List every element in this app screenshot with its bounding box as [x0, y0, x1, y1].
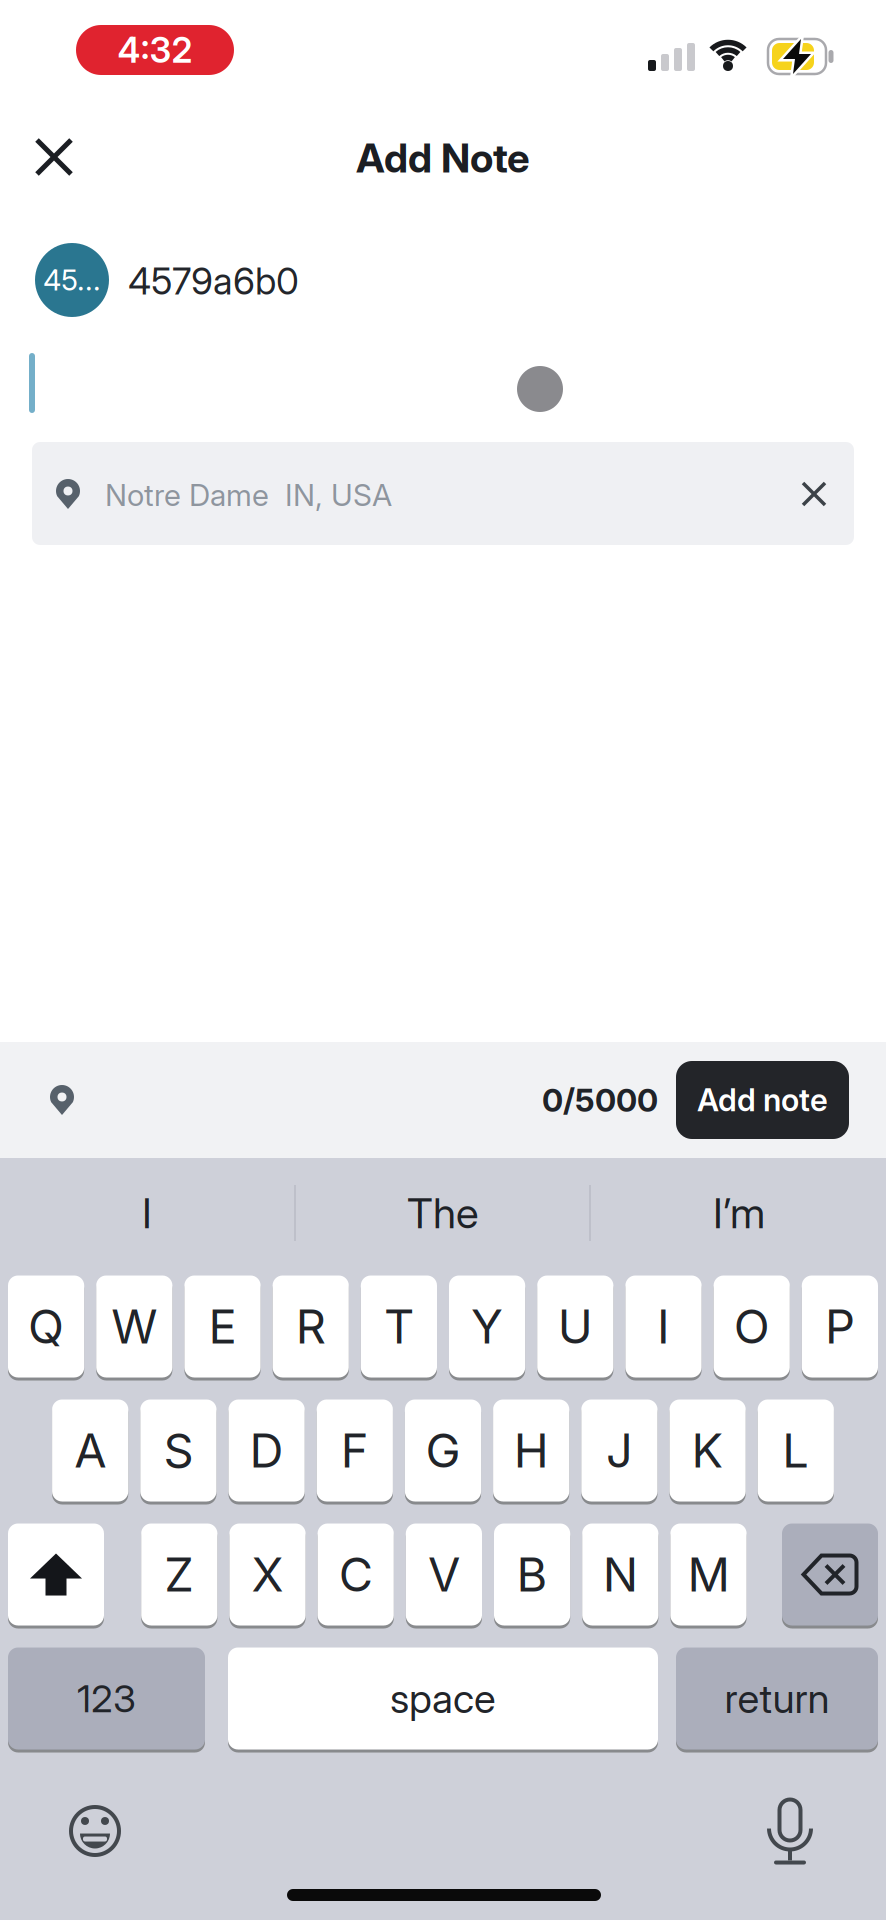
staticText: M [687, 1546, 729, 1603]
button[interactable]: I’m [594, 1168, 884, 1258]
staticText: S [163, 1422, 193, 1479]
button[interactable]: Y [449, 1274, 525, 1379]
staticText: 0/5000 [542, 1081, 658, 1119]
staticText: O [734, 1298, 770, 1355]
button[interactable]: E [184, 1274, 261, 1379]
button[interactable]: Delete [782, 1522, 878, 1627]
staticText: P [825, 1298, 855, 1355]
staticText: L [782, 1422, 809, 1479]
button[interactable]: Z [141, 1522, 217, 1627]
button[interactable]: Location [42, 1080, 82, 1120]
staticText: 45... [43, 262, 101, 298]
button[interactable]: O [714, 1274, 790, 1379]
button[interactable]: space [228, 1646, 658, 1751]
button[interactable]: 4:32 [76, 25, 234, 75]
staticText: Y [471, 1298, 503, 1355]
staticText: G [425, 1422, 460, 1479]
button[interactable]: Close [24, 127, 84, 187]
button[interactable]: The [298, 1168, 588, 1258]
staticText: R [296, 1298, 326, 1355]
staticText: W [111, 1298, 157, 1355]
button[interactable]: U [537, 1274, 613, 1379]
button[interactable]: Shift [8, 1522, 104, 1627]
button[interactable]: X [229, 1522, 306, 1627]
staticText: return [724, 1674, 829, 1723]
button[interactable]: Emoji [67, 1803, 123, 1859]
button[interactable]: R [273, 1274, 349, 1379]
button[interactable]: C [318, 1522, 394, 1627]
staticText: H [514, 1422, 549, 1479]
button[interactable]: A [52, 1398, 128, 1503]
staticText: U [558, 1298, 593, 1355]
staticText: 4579a6b0 [128, 259, 299, 303]
button[interactable]: I [2, 1168, 292, 1258]
staticText: Add note [697, 1081, 828, 1119]
button[interactable]: 123 [8, 1646, 205, 1751]
button[interactable]: H [493, 1398, 569, 1503]
staticText: C [339, 1546, 373, 1603]
button[interactable]: I [625, 1274, 702, 1379]
staticText: Add Note [356, 134, 530, 182]
staticText: I [142, 1188, 152, 1238]
staticText: V [428, 1546, 460, 1603]
staticText: Notre Dame IN, USA [105, 477, 392, 513]
staticText: A [74, 1422, 106, 1479]
button[interactable]: M [670, 1522, 747, 1627]
button[interactable]: G [405, 1398, 481, 1503]
button[interactable]: T [361, 1274, 437, 1379]
staticText: F [341, 1422, 369, 1479]
button[interactable]: F [317, 1398, 393, 1503]
staticText: 123 [77, 1675, 136, 1721]
staticText: space [390, 1674, 496, 1723]
button[interactable]: V [406, 1522, 482, 1627]
button[interactable]: B [494, 1522, 570, 1627]
staticText: D [250, 1422, 284, 1479]
button[interactable]: Remove location [789, 469, 839, 519]
button[interactable]: Add note [676, 1061, 849, 1139]
button[interactable]: Dictate [766, 1792, 814, 1859]
button[interactable]: K [669, 1398, 746, 1503]
button[interactable]: Q [8, 1274, 84, 1379]
staticText: Z [164, 1546, 194, 1603]
staticText: B [517, 1546, 548, 1603]
staticText: E [208, 1298, 236, 1355]
staticText: Q [28, 1298, 64, 1355]
button[interactable]: N [582, 1522, 658, 1627]
staticText: I’m [713, 1188, 765, 1238]
button[interactable]: J [581, 1398, 657, 1503]
staticText: N [603, 1546, 638, 1603]
staticText: K [692, 1422, 724, 1479]
button[interactable]: D [228, 1398, 305, 1503]
staticText: The [407, 1188, 479, 1238]
button[interactable]: return [676, 1646, 878, 1751]
button[interactable]: W [96, 1274, 172, 1379]
staticText: X [251, 1546, 283, 1603]
button[interactable]: S [140, 1398, 216, 1503]
staticText: 4:32 [117, 29, 192, 71]
button[interactable]: L [758, 1398, 834, 1503]
staticText: T [384, 1298, 414, 1355]
button[interactable]: P [802, 1274, 878, 1379]
staticText: J [606, 1422, 633, 1479]
staticText: I [657, 1298, 670, 1355]
